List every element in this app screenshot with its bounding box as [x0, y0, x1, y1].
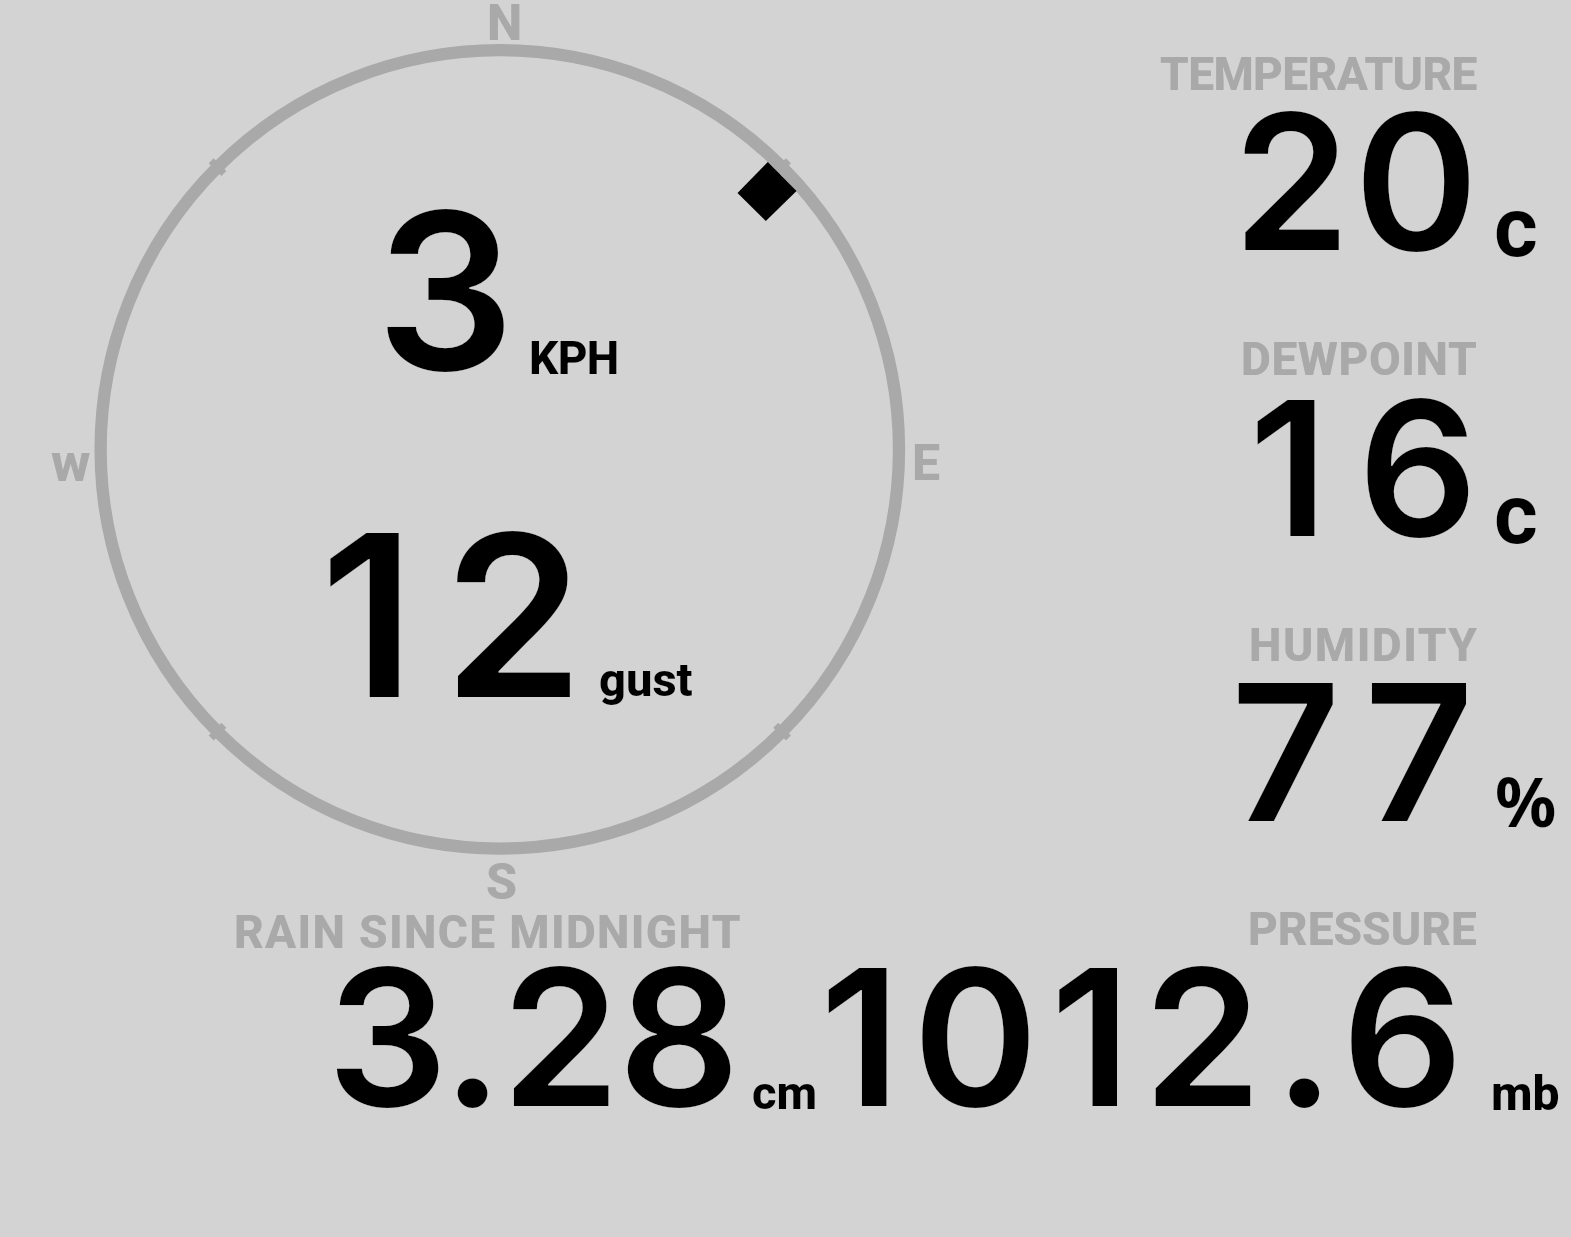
staticText: 3	[376, 159, 515, 423]
staticText: 12	[320, 479, 612, 751]
staticText: c	[1494, 465, 1538, 563]
button[interactable]: Rain since midnight 3.28 cm	[220, 895, 830, 1125]
button[interactable]: Pressure 1012.6 mb	[830, 895, 1571, 1125]
staticText: 77	[1231, 637, 1494, 867]
button[interactable]: Wind 3 KPH, gusting 12, direction north-…	[96, 44, 906, 856]
staticText: 16	[1249, 355, 1508, 581]
staticText: 1012.6	[820, 922, 1476, 1152]
button[interactable]: Dew point 16 degrees Celsius	[1130, 325, 1571, 555]
staticText: w	[51, 431, 91, 494]
staticText: S	[486, 853, 518, 912]
staticText: 20	[1233, 68, 1483, 295]
button[interactable]: Temperature 20 degrees Celsius	[1130, 40, 1571, 270]
staticText: E	[912, 434, 941, 493]
staticText: %	[1495, 754, 1557, 847]
staticText: RAIN SINCE MIDNIGHT	[234, 905, 742, 959]
staticText: PRESSURE	[1248, 902, 1477, 956]
staticText: DEWPOINT	[1241, 332, 1478, 386]
staticText: HUMIDITY	[1249, 618, 1479, 672]
staticText: 3.28	[327, 922, 739, 1152]
button[interactable]: Humidity 77 percent	[1130, 610, 1571, 840]
staticText: gust	[599, 652, 693, 707]
staticText: KPH	[529, 331, 619, 385]
staticText: mb	[1491, 1065, 1560, 1121]
staticText: N	[487, 0, 523, 53]
staticText: cm	[752, 1065, 818, 1120]
staticText: c	[1494, 178, 1538, 276]
staticText: TEMPERATURE	[1160, 47, 1477, 101]
